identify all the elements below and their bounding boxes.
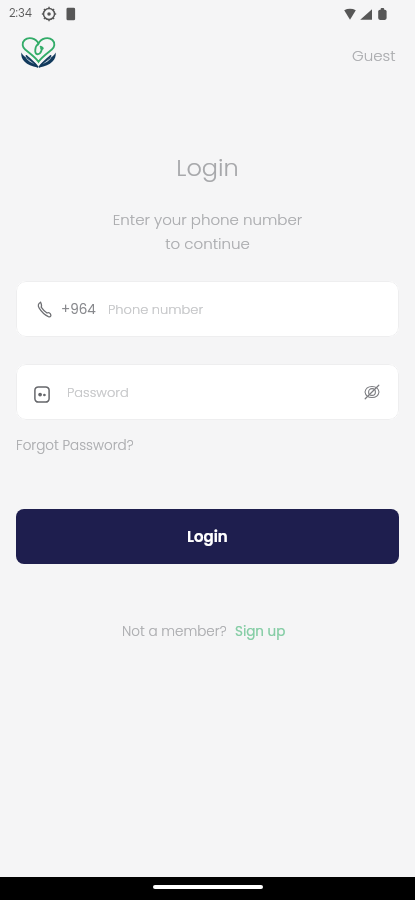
- button[interactable]: Guest: [352, 45, 396, 66]
- staticText: Login: [0, 151, 415, 185]
- staticText: Login: [187, 526, 228, 547]
- button[interactable]: +964: [16, 281, 399, 337]
- button[interactable]: Forgot Password?: [16, 436, 134, 455]
- button[interactable]: Show password: [359, 379, 385, 405]
- staticText: +964: [61, 300, 96, 319]
- staticText: Password: [67, 383, 129, 401]
- staticText: Not a member?: [122, 622, 227, 641]
- button[interactable]: App logo: [16, 34, 60, 78]
- staticText: Phone number: [108, 300, 204, 318]
- button[interactable]: Login: [16, 509, 399, 564]
- staticText: 2:34: [9, 5, 33, 21]
- button[interactable]: Password: [16, 364, 399, 420]
- staticText: Enter your phone number to continue: [0, 209, 415, 255]
- button[interactable]: Sign up: [235, 622, 286, 641]
